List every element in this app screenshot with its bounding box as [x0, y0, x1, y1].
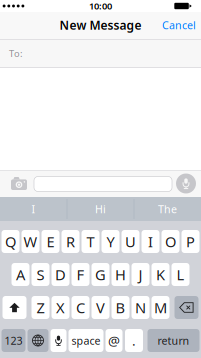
staticText: D: [55, 265, 66, 284]
staticText: @: [108, 332, 120, 349]
button[interactable]: Next keyboard: [27, 329, 48, 352]
button[interactable]: Shift: [2, 296, 26, 319]
button[interactable]: Q: [1, 230, 19, 253]
button[interactable]: iMessage text field: [34, 176, 172, 191]
button[interactable]: X: [51, 296, 69, 319]
staticText: O: [165, 232, 176, 251]
staticText: V: [96, 298, 105, 317]
button[interactable]: U: [121, 230, 139, 253]
button[interactable]: M: [151, 296, 169, 319]
staticText: N: [135, 298, 146, 317]
staticText: A: [16, 265, 25, 284]
button[interactable]: return: [147, 329, 199, 352]
button[interactable]: Z: [31, 296, 49, 319]
button[interactable]: Dictate: [50, 329, 66, 352]
button[interactable]: W: [21, 230, 39, 253]
staticText: Hi: [95, 202, 106, 216]
staticText: P: [186, 232, 195, 251]
staticText: H: [115, 265, 126, 284]
button[interactable]: D: [51, 263, 69, 286]
staticText: F: [76, 265, 84, 284]
staticText: return: [157, 333, 189, 348]
button[interactable]: C: [71, 296, 89, 319]
button[interactable]: The: [134, 197, 201, 221]
button[interactable]: Cancel: [157, 13, 201, 37]
button[interactable]: V: [91, 296, 109, 319]
staticText: R: [66, 232, 75, 251]
staticText: B: [115, 298, 125, 317]
staticText: 10:00: [89, 0, 112, 12]
staticText: New Message: [59, 17, 141, 33]
button[interactable]: S: [31, 263, 49, 286]
button[interactable]: R: [61, 230, 79, 253]
staticText: K: [156, 265, 165, 284]
button[interactable]: F: [71, 263, 89, 286]
staticText: L: [176, 265, 184, 284]
staticText: .: [132, 332, 136, 349]
button[interactable]: space: [68, 329, 103, 352]
staticText: To:: [9, 47, 23, 60]
staticText: The: [158, 202, 177, 216]
staticText: Q: [5, 232, 16, 251]
staticText: M: [154, 298, 167, 317]
staticText: X: [56, 298, 65, 317]
button[interactable]: Delete: [174, 296, 198, 319]
button[interactable]: I: [0, 197, 67, 221]
button[interactable]: N: [131, 296, 149, 319]
button[interactable]: Hi: [67, 197, 134, 221]
button[interactable]: L: [171, 263, 189, 286]
staticText: J: [138, 265, 142, 284]
staticText: Y: [106, 232, 114, 251]
staticText: space: [71, 333, 100, 348]
staticText: E: [46, 232, 54, 251]
button[interactable]: T: [81, 230, 99, 253]
button[interactable]: O: [161, 230, 179, 253]
button[interactable]: Y: [101, 230, 119, 253]
button[interactable]: A: [11, 263, 29, 286]
button[interactable]: Record audio message: [174, 171, 198, 195]
button[interactable]: H: [111, 263, 129, 286]
button[interactable]: Take photo: [5, 170, 33, 196]
button[interactable]: J: [131, 263, 149, 286]
staticText: Cancel: [162, 18, 196, 32]
button[interactable]: G: [91, 263, 109, 286]
staticText: Z: [36, 298, 44, 317]
button[interactable]: K: [151, 263, 169, 286]
button[interactable]: @: [105, 329, 122, 352]
button[interactable]: P: [181, 230, 199, 253]
button[interactable]: 123: [1, 329, 25, 352]
staticText: T: [86, 232, 94, 251]
button[interactable]: .: [125, 329, 143, 352]
staticText: U: [125, 232, 136, 251]
staticText: 123: [4, 333, 22, 348]
button[interactable]: B: [111, 296, 129, 319]
button[interactable]: I: [141, 230, 159, 253]
button[interactable]: E: [41, 230, 59, 253]
staticText: C: [76, 298, 85, 317]
staticText: G: [95, 265, 106, 284]
staticText: I: [31, 202, 35, 216]
staticText: I: [148, 232, 153, 251]
staticText: W: [23, 232, 37, 251]
staticText: S: [36, 265, 44, 284]
